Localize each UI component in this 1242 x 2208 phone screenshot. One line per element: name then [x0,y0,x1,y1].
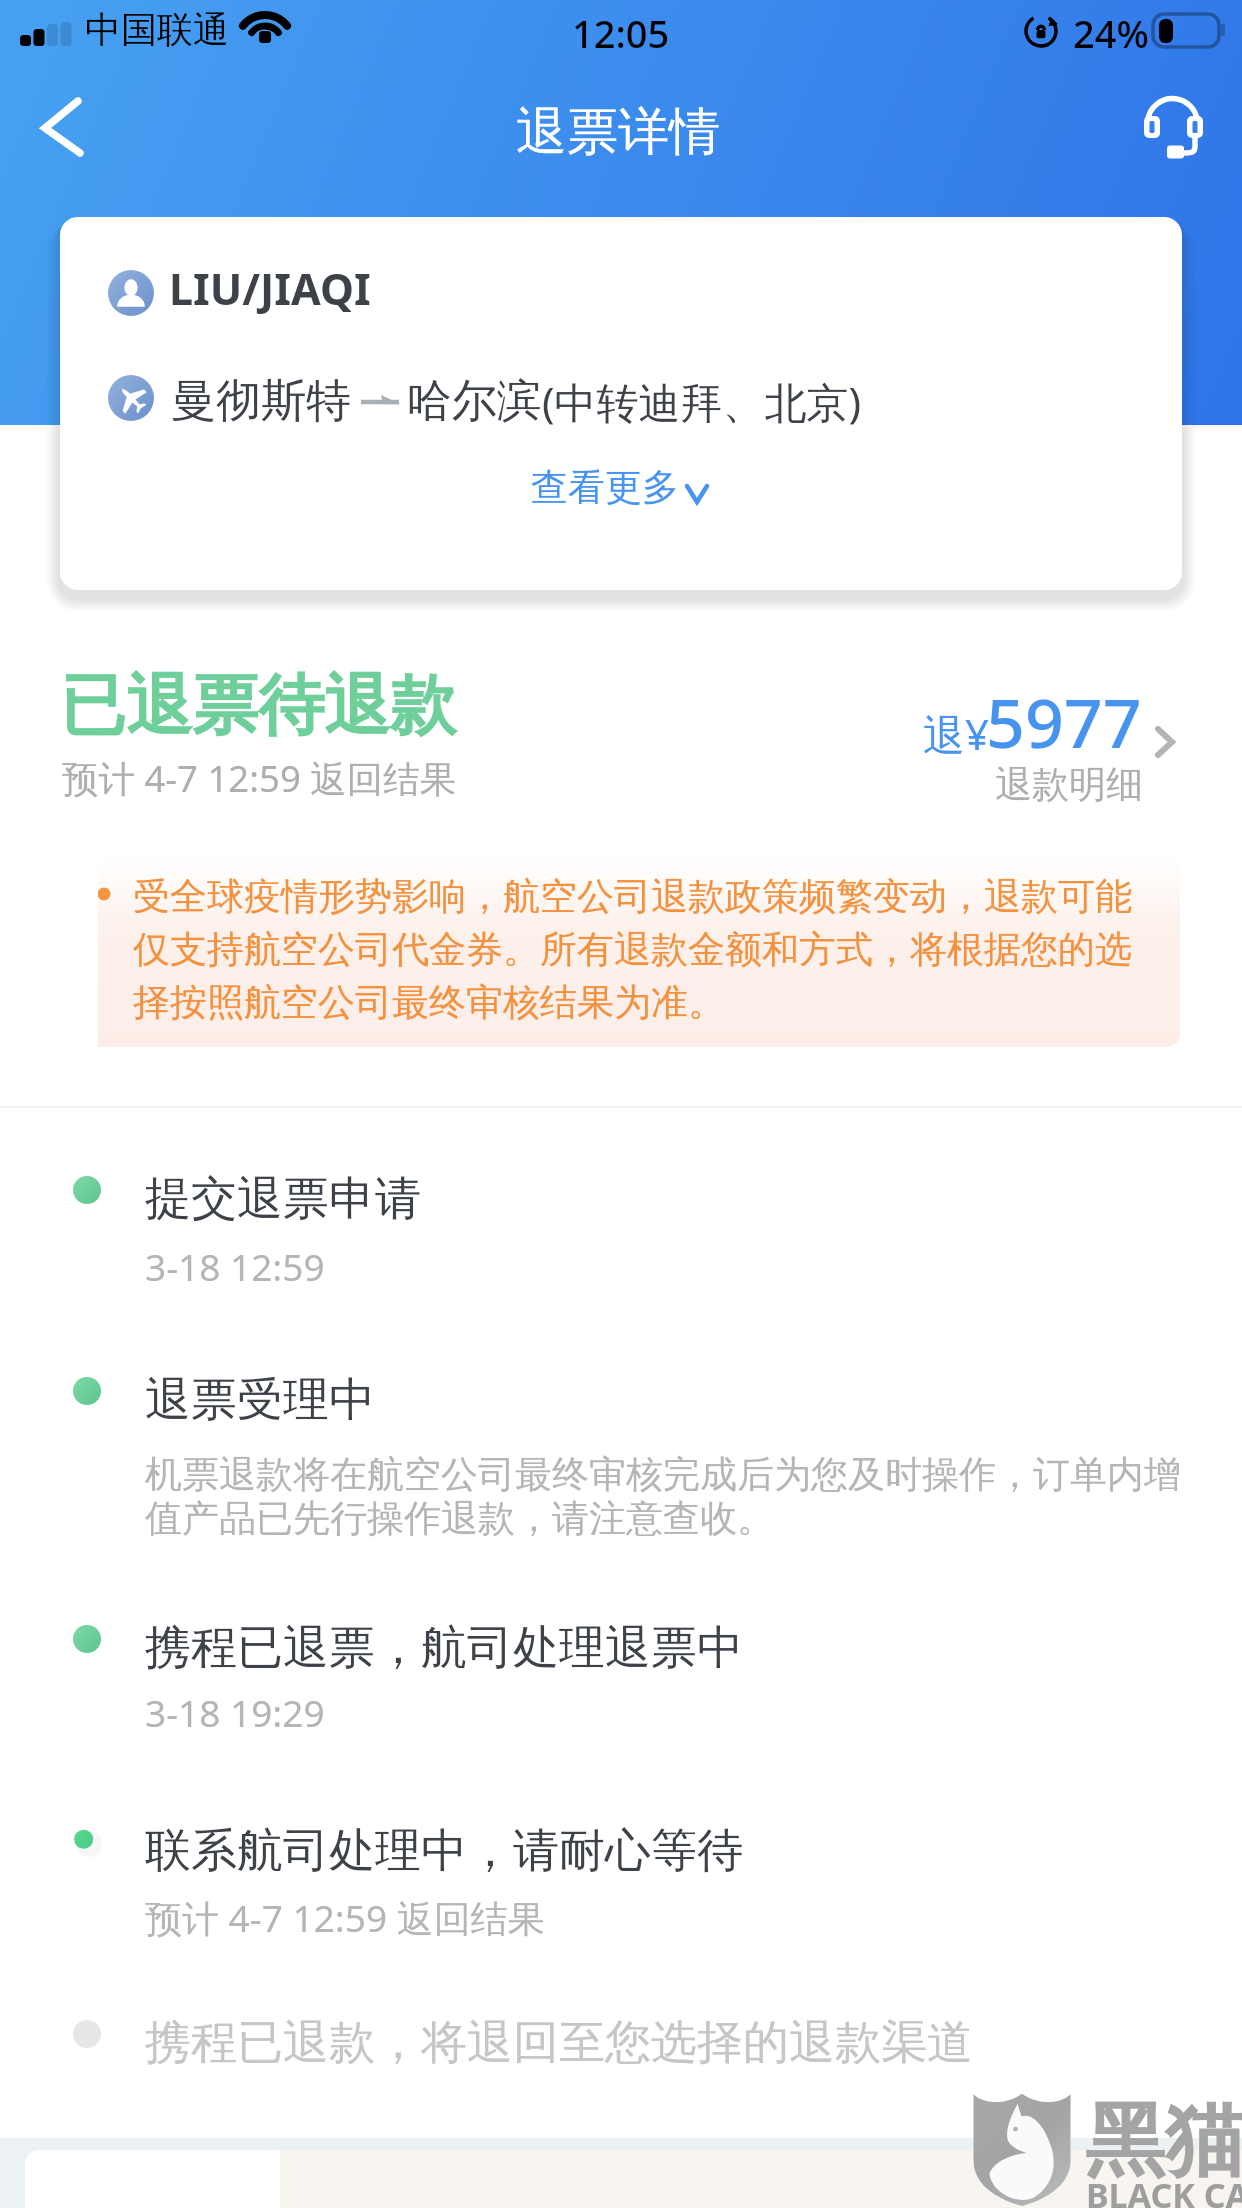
button[interactable]: Back [14,82,110,178]
button[interactable] [60,1808,1182,1932]
staticText: (中转迪拜、北京) [542,373,862,430]
staticText: LIU/JIAQI [169,259,371,318]
staticText: 3-18 12:59 [145,1241,1185,1291]
button[interactable] [60,1357,1182,1525]
staticText: 携程已退款，将退回至您选择的退款渠道 [145,2014,973,2072]
staticText: 查看更多 [531,464,679,511]
staticText: 退票受理中 [145,1371,375,1429]
staticText: 机票退款将在航空公司最终审核完成后为您及时操作，订单内增值产品已先行操作退款，请… [145,1451,1185,1542]
staticText: 3-18 19:29 [145,1687,1185,1737]
staticText: 联系航司处理中，请耐心等待 [145,1822,743,1880]
staticText: 提交退票申请 [145,1170,421,1228]
button[interactable] [60,1605,1182,1729]
button[interactable] [60,2000,1182,2070]
staticText: BLACK CAT [1086,2172,1242,2208]
button[interactable]: 查看更多 [507,454,732,521]
button[interactable] [60,1156,1182,1280]
staticText: 已退票待退款 [60,664,456,747]
staticText: 退款明细 [995,761,1143,808]
staticText: 12:05 [572,7,670,59]
staticText: 退票详情 [516,100,720,164]
staticText: 中国联通 [85,7,229,52]
button[interactable]: Customer service [1128,80,1222,174]
staticText: 曼彻斯特 [171,373,351,430]
staticText: 黑猫 [1085,2091,1242,2192]
staticText: 携程已退票，航司处理退票中 [145,1619,743,1677]
button[interactable]: LIU/JIAQI [60,217,1182,590]
staticText: 哈尔滨 [407,373,542,430]
staticText: 受全球疫情形势影响，航空公司退款政策频繁变动，退款可能仅支持航空公司代金券。所有… [133,873,1145,1026]
staticText: 退¥ [923,705,990,762]
button[interactable] [900,690,1200,820]
staticText: 预计 4-7 12:59 返回结果 [62,753,457,803]
staticText: 5977 [986,675,1142,768]
staticText: 24% [1073,7,1149,59]
staticText: 预计 4-7 12:59 返回结果 [145,1892,1185,1943]
